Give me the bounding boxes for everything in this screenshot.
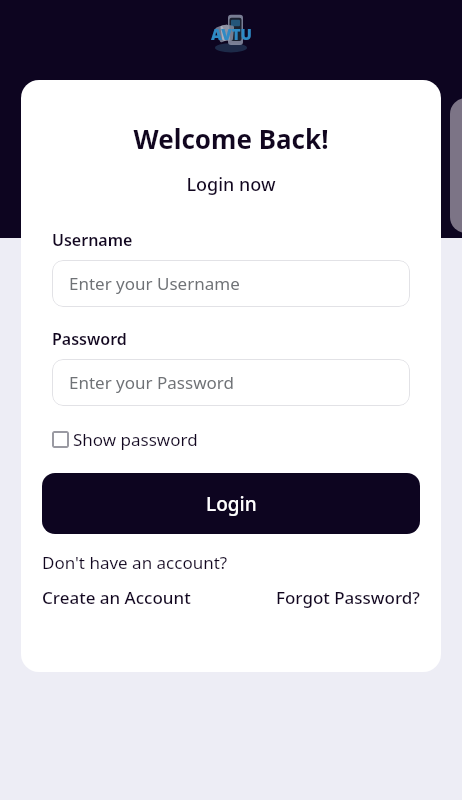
- button[interactable]: Enter your Password: [52, 359, 410, 406]
- staticText: Forgot Password?: [276, 586, 420, 609]
- staticText: Create an Account: [42, 586, 191, 609]
- staticText: Login now: [21, 172, 441, 197]
- staticText: Username: [52, 229, 133, 251]
- staticText: Login: [206, 491, 257, 517]
- button[interactable]: Forgot Password?: [276, 586, 420, 609]
- button[interactable]: Enter your Username: [52, 260, 410, 307]
- staticText: Enter your Password: [69, 371, 234, 394]
- button[interactable]: Login: [42, 473, 420, 534]
- staticText: AVTU: [211, 24, 252, 44]
- staticText: Don't have an account?: [42, 551, 228, 574]
- staticText: Welcome Back!: [21, 121, 441, 156]
- staticText: Enter your Username: [69, 272, 240, 295]
- button[interactable]: Create an Account: [42, 586, 191, 609]
- staticText: Password: [52, 328, 127, 350]
- staticText: Show password: [73, 428, 198, 451]
- button[interactable]: Show password: [52, 426, 198, 453]
